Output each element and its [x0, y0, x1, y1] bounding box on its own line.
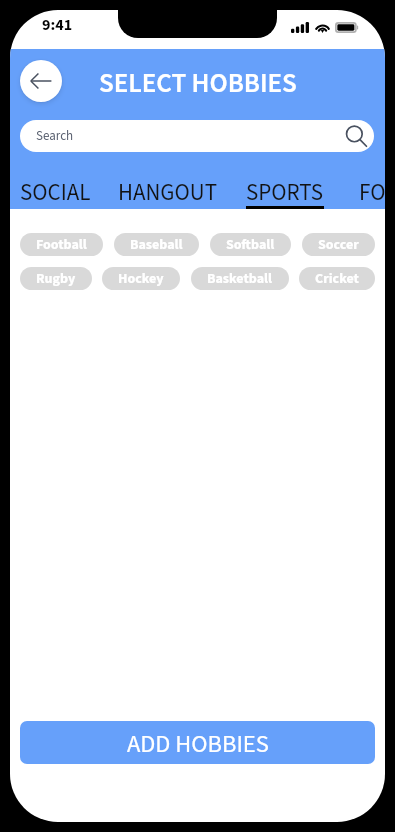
staticText: Cricket [315, 269, 359, 289]
staticText: Search [36, 127, 74, 146]
button[interactable]: Baseball [114, 233, 199, 256]
button[interactable]: ADD HOBBIES [20, 721, 375, 764]
button[interactable]: SPORTS [246, 171, 324, 209]
staticText: SOCIAL [20, 176, 91, 209]
staticText: 9:41 [42, 14, 73, 37]
staticText: Baseball [130, 235, 183, 255]
staticText: Soccer [318, 235, 359, 255]
button[interactable]: Football [20, 233, 103, 256]
staticText: Football [36, 235, 87, 255]
button[interactable]: FOOD [359, 171, 385, 209]
button[interactable]: Search [20, 120, 374, 152]
staticText: Rugby [36, 269, 76, 289]
staticText: Softball [226, 235, 275, 255]
staticText: SPORTS [246, 176, 324, 209]
staticText: Hockey [118, 269, 164, 289]
button[interactable]: Softball [210, 233, 291, 256]
button[interactable]: Soccer [302, 233, 375, 256]
button[interactable]: Cricket [299, 267, 375, 290]
staticText: ADD HOBBIES [127, 727, 269, 762]
staticText: FOOD [359, 176, 385, 209]
button[interactable]: SOCIAL [20, 171, 91, 209]
button[interactable]: Rugby [20, 267, 92, 290]
button[interactable]: Basketball [191, 267, 289, 290]
button[interactable]: Back [20, 60, 62, 102]
staticText: SELECT HOBBIES [99, 64, 297, 102]
button[interactable]: HANGOUT [118, 171, 217, 209]
staticText: Basketball [207, 269, 273, 289]
staticText: HANGOUT [118, 176, 217, 209]
button[interactable]: Hockey [102, 267, 180, 290]
